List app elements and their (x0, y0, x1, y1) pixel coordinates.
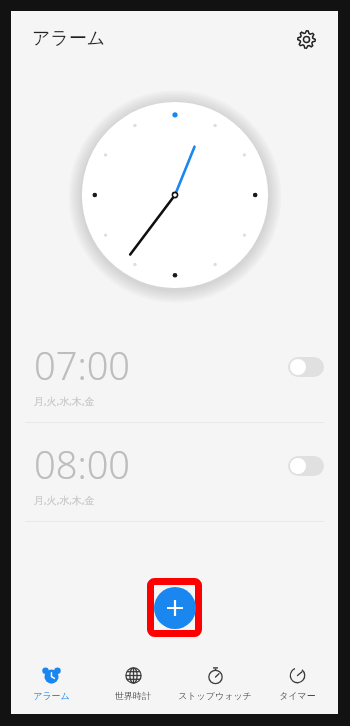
button[interactable]: ストップウォッチ (174, 652, 256, 714)
button[interactable]: Toggle alarm (288, 357, 324, 377)
staticText: 月,火,水,木,金 (34, 493, 95, 507)
staticText: 月,火,水,木,金 (34, 394, 95, 408)
staticText: 07:00 (34, 339, 131, 391)
button[interactable]: Settings (286, 19, 326, 59)
button[interactable]: 世界時計 (92, 652, 174, 714)
button[interactable]: Toggle alarm (288, 456, 324, 476)
staticText: 08:00 (34, 438, 131, 490)
button[interactable]: 08:00 (11, 423, 338, 521)
staticText: アラーム (32, 27, 106, 50)
button[interactable]: Add alarm (154, 587, 196, 629)
staticText: ストップウォッチ (178, 690, 252, 701)
button[interactable]: 07:00 (11, 324, 338, 422)
other: Add alarm (154, 587, 196, 629)
button[interactable]: タイマー (256, 652, 338, 714)
staticText: タイマー (279, 690, 316, 701)
button[interactable]: アラーム (11, 652, 92, 714)
staticText: 世界時計 (115, 690, 151, 701)
staticText: アラーム (33, 690, 70, 701)
